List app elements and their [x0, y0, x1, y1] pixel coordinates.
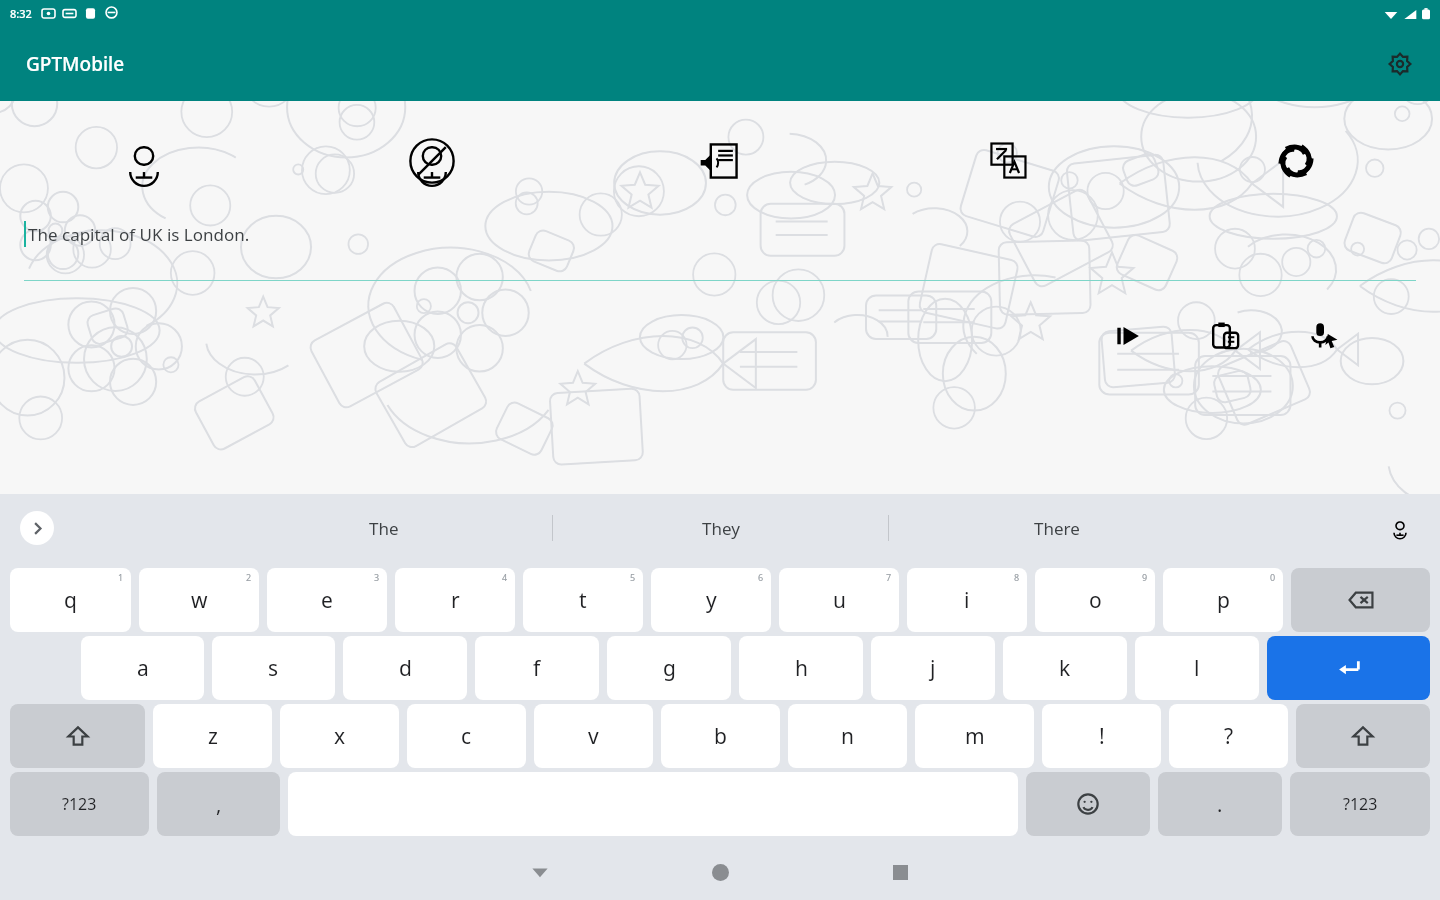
staticText: 5 [630, 571, 636, 583]
button[interactable]: Read aloud [576, 101, 864, 221]
button[interactable]: Paste [1194, 304, 1258, 368]
staticText: 8 [1014, 571, 1020, 583]
staticText: 8:32 [10, 6, 32, 21]
staticText: GPTMobile [26, 51, 125, 77]
staticText: t [579, 586, 587, 615]
button[interactable]: Microphone off [288, 101, 576, 221]
staticText: h [795, 654, 808, 683]
button[interactable]: q [10, 568, 131, 632]
staticText: 3 [374, 571, 380, 583]
button[interactable]: n [788, 704, 907, 768]
staticText: The capital of UK is London. [28, 223, 250, 246]
staticText: r [451, 586, 460, 615]
staticText: j [930, 654, 936, 683]
staticText: 1 [118, 571, 124, 583]
button[interactable]: There [889, 494, 1224, 562]
button[interactable]: k [1003, 636, 1127, 700]
button[interactable]: a [81, 636, 204, 700]
button[interactable]: x [280, 704, 399, 768]
button[interactable]: Enter [1267, 636, 1430, 700]
button[interactable]: Back [450, 844, 630, 900]
button[interactable]: g [607, 636, 731, 700]
staticText: u [833, 586, 846, 615]
button[interactable]: Shift [10, 704, 145, 768]
staticText: v [588, 722, 599, 751]
staticText: 2 [246, 571, 252, 583]
button[interactable]: o [1035, 568, 1155, 632]
staticText: b [714, 722, 727, 751]
button[interactable]: Backspace [1291, 568, 1430, 632]
staticText: c [461, 722, 472, 751]
button[interactable]: b [661, 704, 780, 768]
button[interactable]: d [343, 636, 467, 700]
staticText: . [1217, 791, 1223, 818]
staticText: o [1089, 586, 1102, 615]
staticText: q [64, 586, 77, 615]
button[interactable]: c [407, 704, 526, 768]
staticText: 9 [1142, 571, 1148, 583]
button[interactable]: Recents [810, 844, 990, 900]
button[interactable]: p [1163, 568, 1283, 632]
staticText: x [334, 722, 346, 751]
staticText: There [1034, 517, 1080, 540]
button[interactable]: Symbols [1290, 772, 1430, 836]
staticText: ? [1224, 722, 1234, 751]
button[interactable]: Voice typing [1382, 510, 1418, 546]
staticText: p [1217, 586, 1230, 615]
staticText: i [964, 586, 970, 615]
button[interactable]: Shift [1296, 704, 1430, 768]
button[interactable]: Home [630, 844, 810, 900]
button[interactable]: u [779, 568, 899, 632]
staticText: , [216, 791, 222, 818]
staticText: They [702, 517, 740, 540]
staticText: z [208, 722, 218, 751]
button[interactable]: Expand toolbar [20, 511, 54, 545]
button[interactable]: ! [1042, 704, 1161, 768]
staticText: m [965, 722, 985, 751]
button[interactable]: f [475, 636, 599, 700]
button[interactable]: Period [1158, 772, 1282, 836]
staticText: The [369, 517, 399, 540]
staticText: 6 [758, 571, 764, 583]
staticText: ?123 [1343, 793, 1378, 815]
button[interactable]: t [523, 568, 643, 632]
staticText: g [663, 654, 676, 683]
button[interactable]: The [216, 494, 552, 562]
button[interactable]: Voice input [1292, 304, 1356, 368]
staticText: l [1194, 654, 1200, 683]
button[interactable]: y [651, 568, 771, 632]
staticText: 7 [886, 571, 892, 583]
staticText: f [533, 654, 541, 683]
button[interactable]: w [139, 568, 259, 632]
button[interactable]: Emoji [1026, 772, 1150, 836]
button[interactable]: Symbols [10, 772, 149, 836]
button[interactable]: l [1135, 636, 1259, 700]
staticText: w [191, 586, 208, 615]
button[interactable]: i [907, 568, 1027, 632]
button[interactable]: Settings [1378, 42, 1422, 86]
button[interactable]: Comma [157, 772, 280, 836]
staticText: 0 [1270, 571, 1276, 583]
staticText: n [841, 722, 854, 751]
button[interactable]: e [267, 568, 387, 632]
staticText: ! [1099, 722, 1105, 751]
button[interactable]: j [871, 636, 995, 700]
button[interactable]: OpenAI [1152, 101, 1440, 221]
button[interactable]: Translate [864, 101, 1152, 221]
button[interactable]: r [395, 568, 515, 632]
button[interactable]: Microphone [0, 101, 288, 221]
button[interactable]: h [739, 636, 863, 700]
button[interactable]: s [212, 636, 335, 700]
staticText: ?123 [62, 793, 97, 815]
button[interactable]: ? [1169, 704, 1288, 768]
button[interactable]: v [534, 704, 653, 768]
staticText: d [399, 654, 412, 683]
button[interactable]: They [553, 494, 888, 562]
staticText: a [137, 654, 149, 683]
staticText: k [1059, 654, 1071, 683]
button[interactable]: Play [1096, 304, 1160, 368]
staticText: e [321, 586, 333, 615]
button[interactable]: z [153, 704, 272, 768]
button[interactable]: m [915, 704, 1034, 768]
